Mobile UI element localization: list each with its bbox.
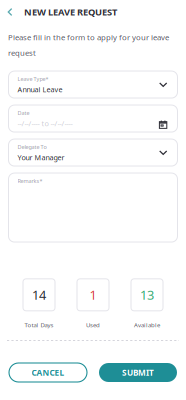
staticText: Please fill in the form to apply for you… [8,32,169,42]
staticText: Used [86,321,100,329]
staticText: Leave Type* [17,75,48,82]
staticText: Remarks* [17,177,42,184]
staticText: Total Days [24,321,53,329]
staticText: --/--/---- to --/--/---- [17,118,72,128]
staticText: Annual Leave [17,84,62,94]
staticText: Date [17,109,29,116]
staticText: NEW LEAVE REQUEST [24,6,117,18]
staticText: SUBMIT [122,367,154,378]
staticText: Delegate To [17,143,46,150]
staticText: request [8,47,36,58]
staticText: 14 [32,286,46,303]
staticText: CANCEL [31,367,64,378]
staticText: Available [134,321,160,329]
button[interactable]: SUBMIT [99,363,177,382]
staticText: Your Manager [17,152,64,162]
button[interactable]: CANCEL [9,363,87,382]
staticText: 13 [140,286,154,303]
staticText: 1 [89,286,96,303]
button[interactable]: Back [3,5,17,19]
